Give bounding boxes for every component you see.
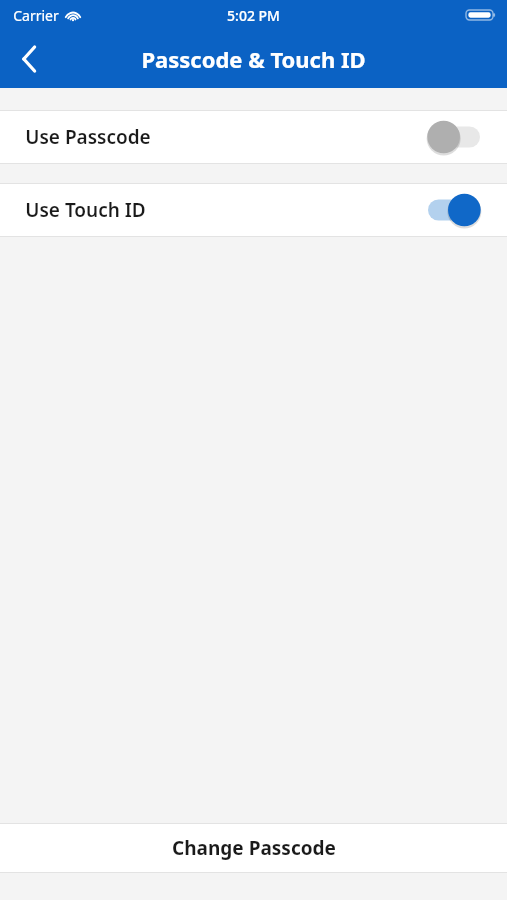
staticText: Change Passcode — [172, 835, 336, 861]
staticText: Carrier — [13, 6, 59, 25]
button[interactable]: Off — [428, 120, 480, 154]
button[interactable]: Back — [0, 30, 58, 88]
staticText: 5:02 PM — [227, 6, 280, 25]
button[interactable]: Change Passcode — [0, 824, 507, 872]
staticText: Passcode & Touch ID — [141, 44, 366, 74]
staticText: Use Touch ID — [25, 197, 146, 223]
staticText: Use Passcode — [25, 124, 151, 150]
button[interactable]: On — [428, 193, 480, 227]
button[interactable]: Use Passcode — [0, 111, 507, 163]
button[interactable]: Use Touch ID — [0, 184, 507, 236]
